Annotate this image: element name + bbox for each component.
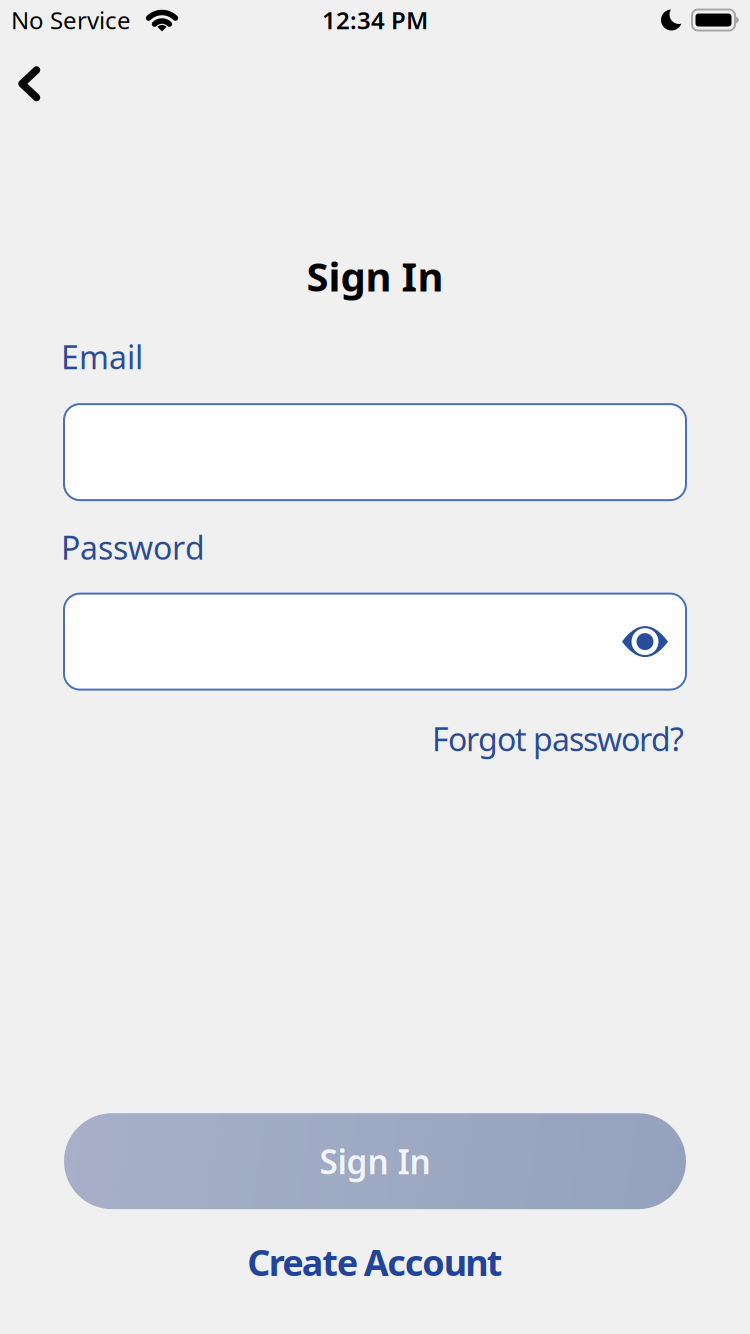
button[interactable]: Create Account	[247, 1238, 503, 1286]
staticText: No Service	[11, 4, 131, 36]
button[interactable]	[0, 594, 750, 690]
button[interactable]	[0, 404, 750, 500]
staticText: Email	[61, 336, 143, 378]
staticText: Sign In	[306, 249, 443, 303]
staticText: Create Account	[247, 1238, 503, 1286]
staticText: Password	[61, 526, 205, 569]
staticText: Forgot password?	[432, 718, 684, 760]
button[interactable]	[622, 626, 668, 658]
button[interactable]: Forgot password?	[432, 718, 684, 760]
button[interactable]: Sign In	[0, 1113, 750, 1209]
staticText: 12:34 PM	[322, 4, 428, 36]
staticText: Sign In	[319, 1139, 430, 1183]
button[interactable]	[22, 70, 36, 97]
